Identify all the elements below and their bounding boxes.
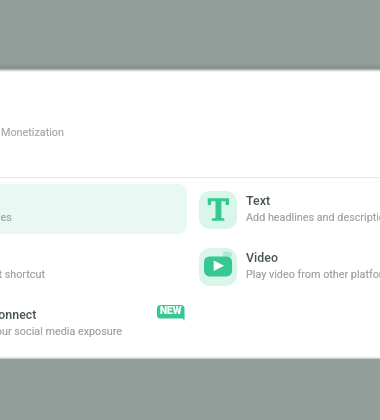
button[interactable]: Social Connect <box>0 298 187 348</box>
staticText: Social Connect <box>0 307 37 322</box>
staticText: NEW <box>160 305 182 317</box>
staticText: Create a post shortcut <box>0 268 45 281</box>
other: Text block <box>199 191 237 229</box>
staticText: Play video from other platforms <box>246 268 380 281</box>
staticText: Text <box>246 193 271 208</box>
button[interactable]: Video <box>196 241 380 291</box>
staticText: Add photos and images <box>0 211 12 224</box>
staticText: Boost your social media exposure <box>0 325 123 338</box>
staticText: Add headlines and descriptions <box>246 211 380 224</box>
button[interactable]: Images <box>0 184 187 234</box>
staticText: Monetization <box>1 126 64 139</box>
other: Video <box>199 248 237 286</box>
button[interactable]: Shortcut <box>0 241 187 291</box>
button[interactable]: Text block <box>196 184 380 234</box>
staticText: Video <box>246 250 278 265</box>
